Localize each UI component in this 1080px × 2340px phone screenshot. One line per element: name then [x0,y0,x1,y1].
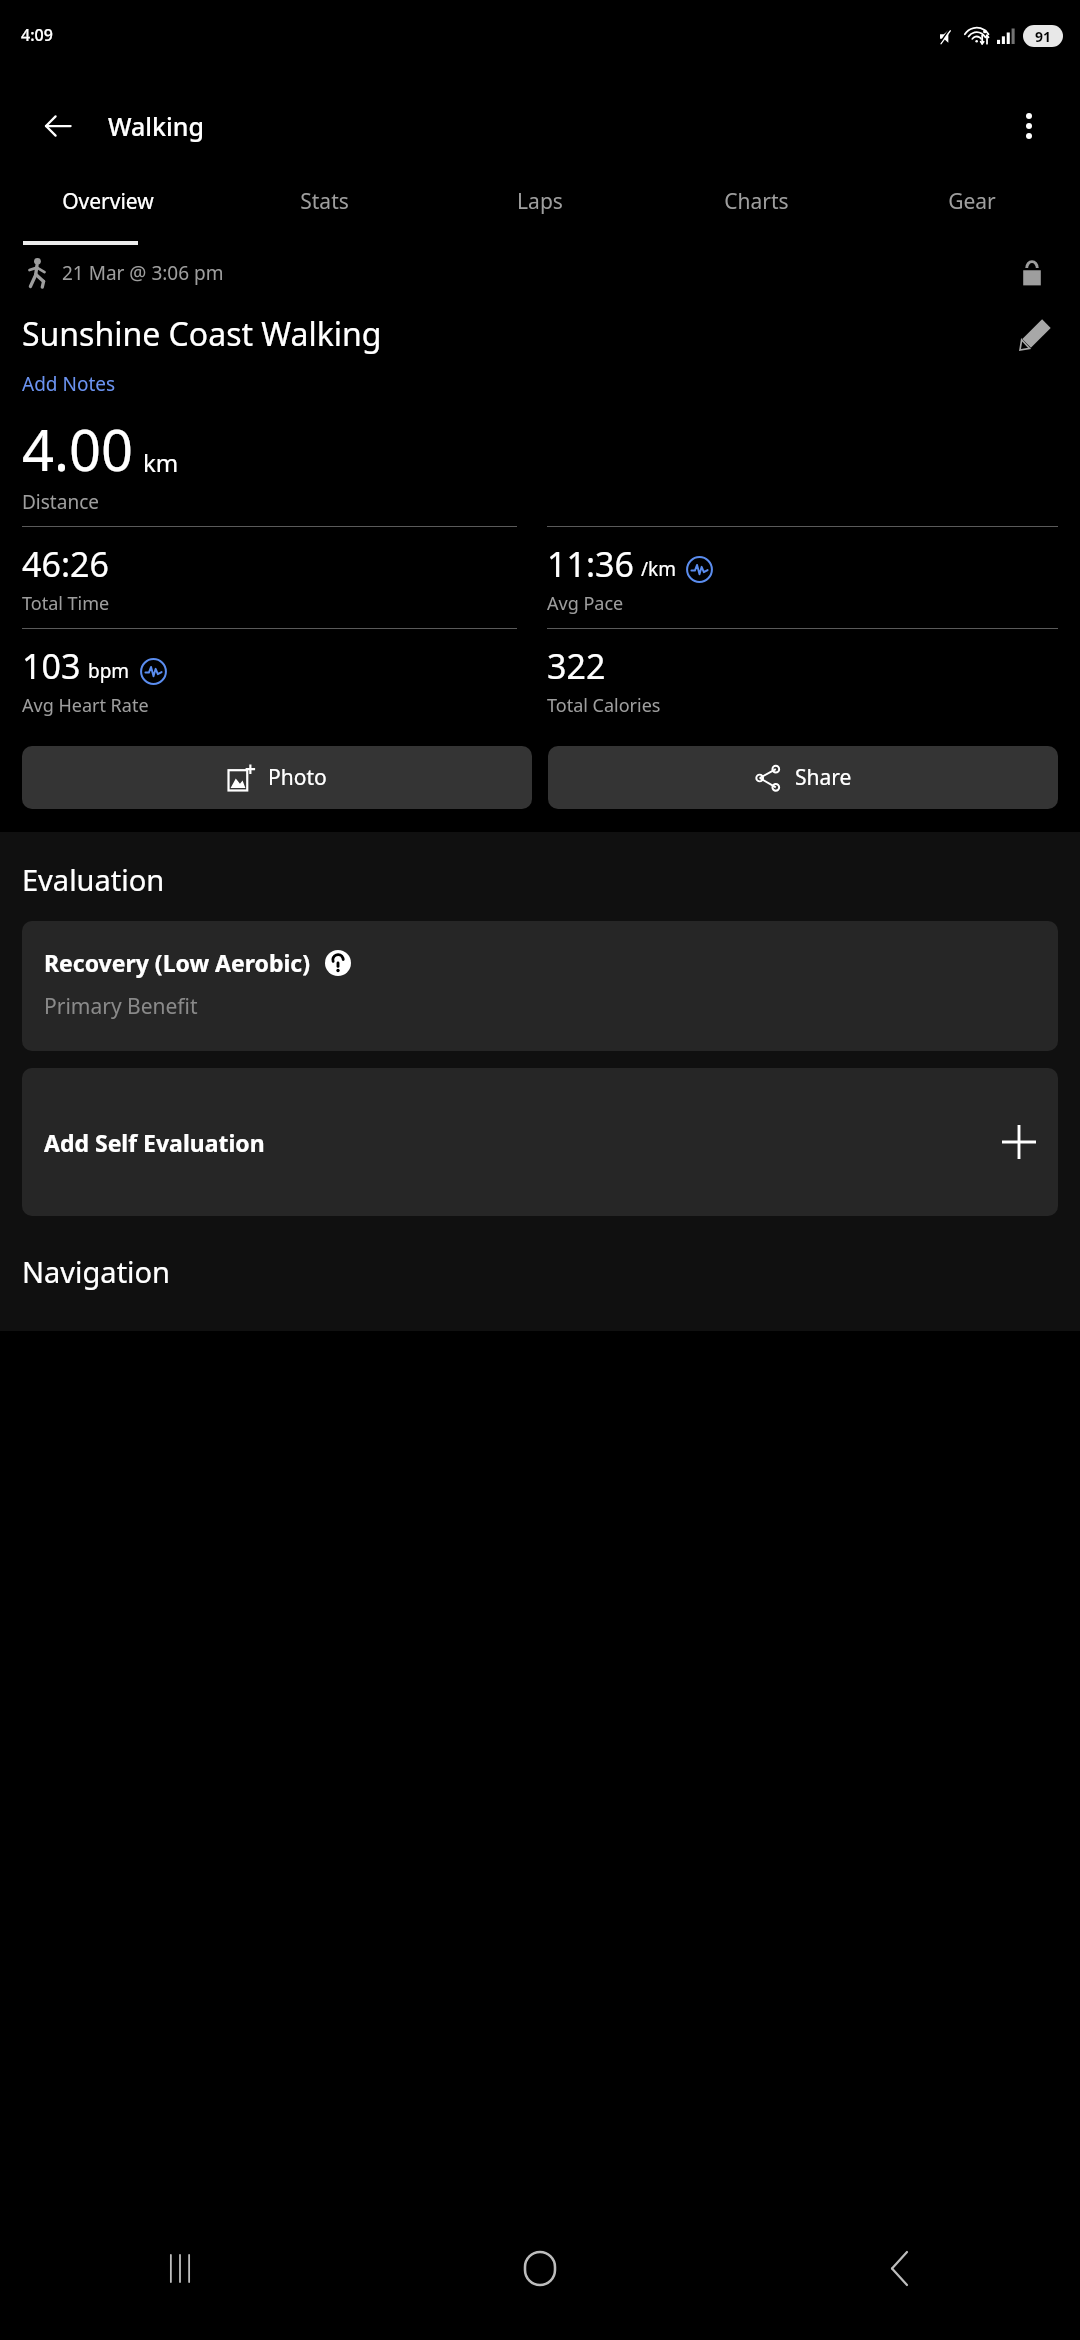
button[interactable]: Back [720,2196,1080,2340]
staticText: Charts [724,187,789,216]
staticText: Share [795,763,852,792]
staticText: 11:36 [547,541,634,587]
staticText: 322 [547,643,606,689]
button[interactable]: Locked [1010,253,1054,293]
staticText: Total Calories [547,693,661,718]
button[interactable]: Stats [216,179,432,245]
staticText: Laps [517,187,563,216]
staticText: Add Notes [22,371,116,397]
staticText: Avg Pace [547,591,624,616]
button[interactable]: Photo [22,746,532,809]
staticText: 91 [1035,27,1052,46]
staticText: 21 Mar @ 3:06 pm [62,260,224,286]
staticText: 46:26 [22,541,109,587]
button[interactable]: Edit name [1012,311,1058,357]
staticText: /km [641,556,676,582]
staticText: Sunshine Coast Walking [22,312,382,356]
button[interactable]: Add Self Evaluation [22,1068,1058,1216]
button[interactable]: Recent apps [0,2196,360,2340]
button[interactable]: More options [1003,100,1055,152]
staticText: Photo [268,763,327,792]
staticText: Stats [300,187,349,216]
staticText: 4:09 [21,24,53,46]
button[interactable]: Help about primary benefit [325,950,351,976]
staticText: Primary Benefit [44,992,198,1021]
button[interactable]: Charts [648,179,864,245]
button[interactable]: Laps [432,179,648,245]
button[interactable]: Overview [0,179,216,245]
button[interactable]: Add Notes [22,371,116,397]
button[interactable]: Share [548,746,1058,809]
staticText: Gear [948,187,996,216]
button[interactable]: Recovery (Low Aerobic) [22,921,1058,1051]
staticText: Distance [22,489,99,515]
button[interactable]: Home [360,2196,720,2340]
staticText: 4.00 [22,411,134,487]
staticText: Total Time [22,591,110,616]
button[interactable]: Back [30,98,86,154]
staticText: Walking [108,109,204,143]
button[interactable]: Gear [864,179,1080,245]
staticText: Navigation [22,1252,171,1291]
staticText: 103 [22,643,81,689]
staticText: Recovery (Low Aerobic) [44,947,311,978]
staticText: bpm [88,658,130,684]
staticText: km [143,446,179,479]
staticText: Avg Heart Rate [22,693,149,718]
staticText: Evaluation [22,860,165,899]
staticText: Add Self Evaluation [44,1127,1002,1158]
staticText: Overview [62,187,154,216]
